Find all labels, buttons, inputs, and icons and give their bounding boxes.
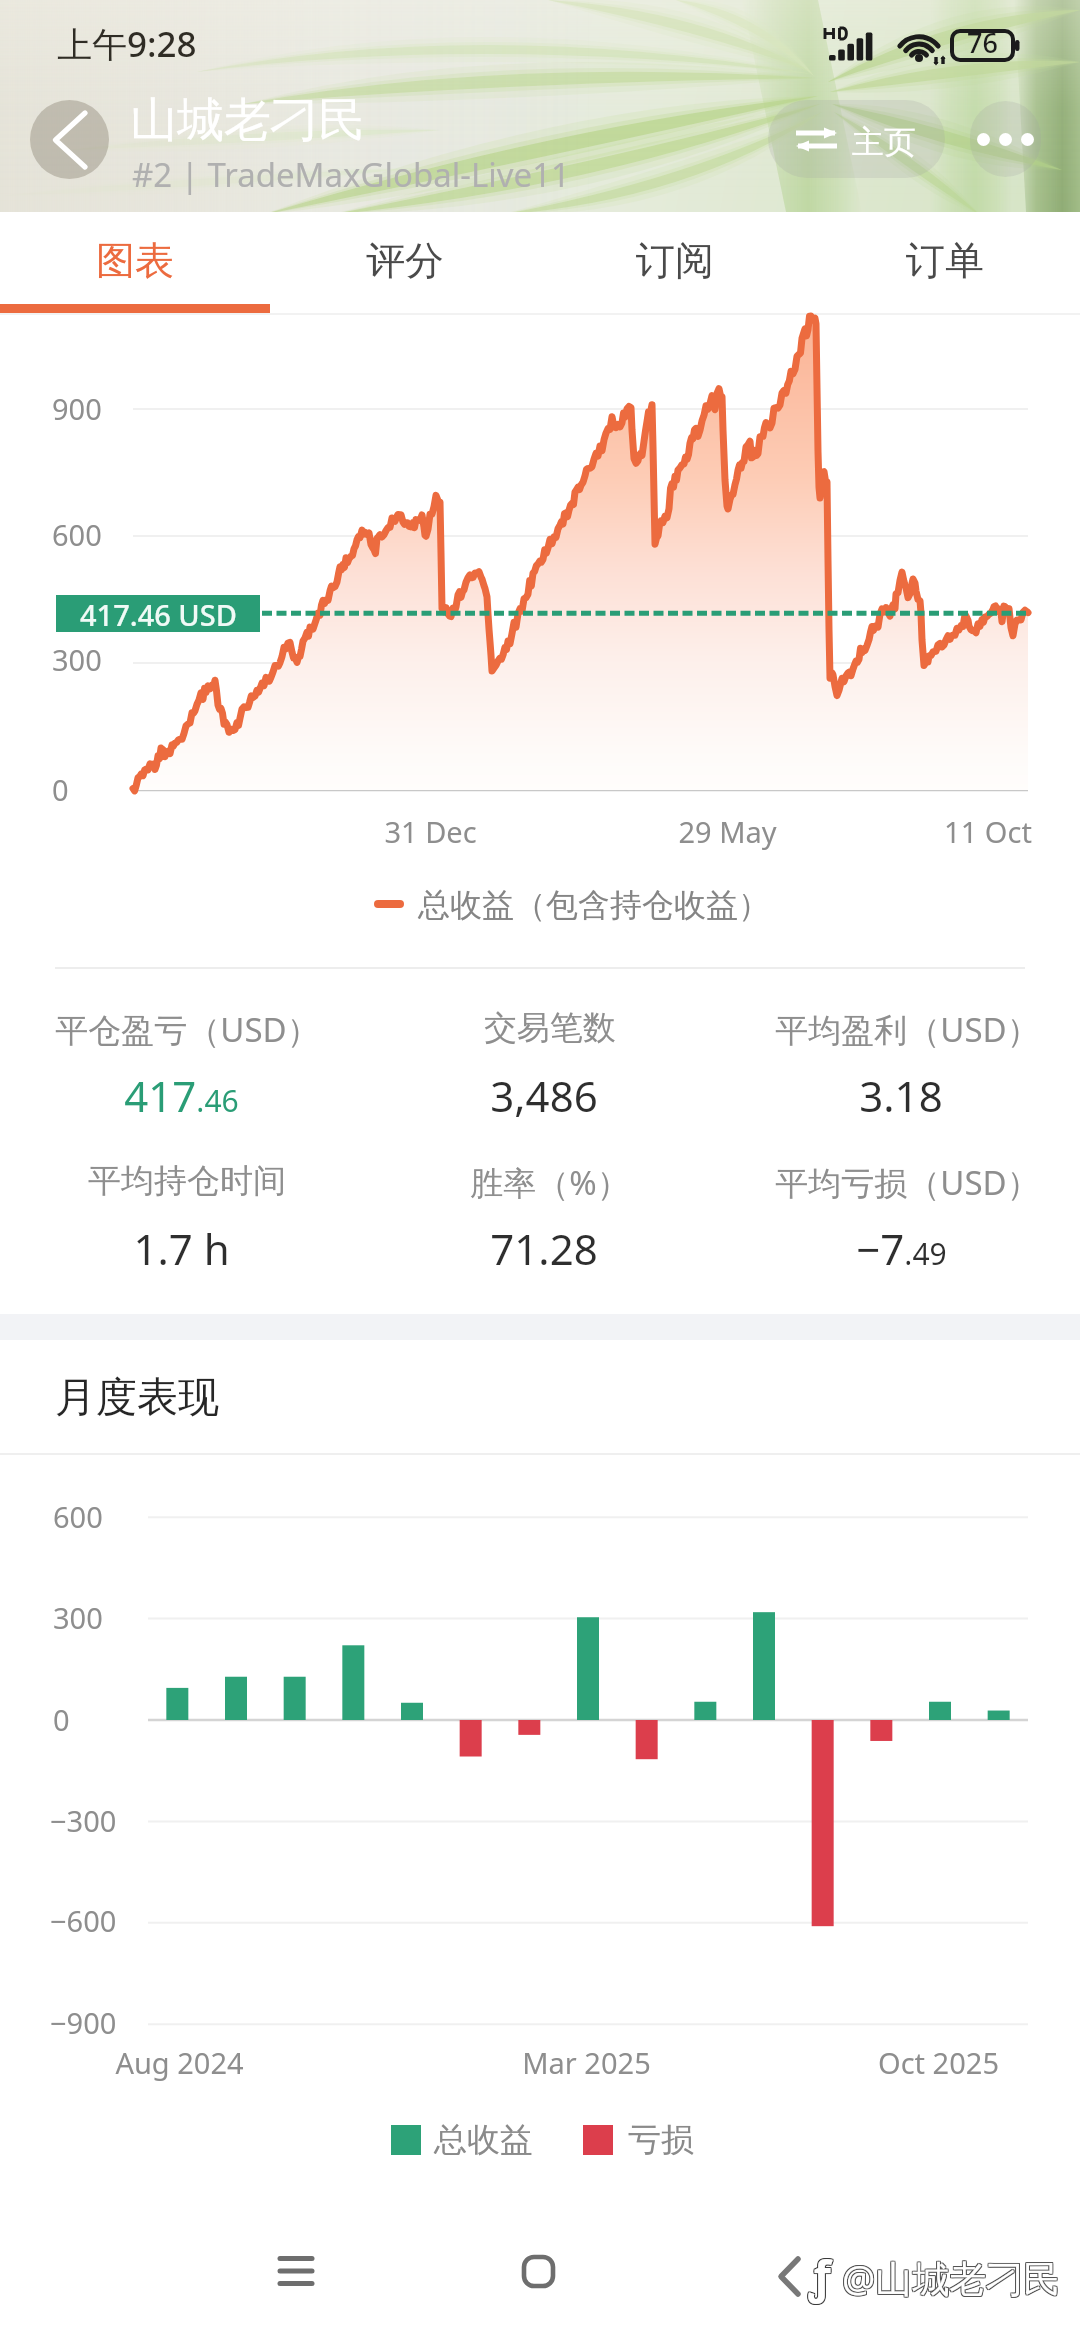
staticText: 417.46 USD: [80, 595, 237, 632]
staticText: 31 Dec: [384, 812, 477, 851]
staticText: 11 Oct: [944, 812, 1032, 851]
staticText: 3.18: [859, 1067, 943, 1124]
staticText: 胜率（%）: [470, 1160, 630, 1205]
staticText: −600: [50, 1901, 117, 1940]
button[interactable]: 评分: [270, 212, 540, 308]
staticText: #2 | TradeMaxGlobal-Live11: [132, 152, 570, 197]
staticText: 总收益（包含持仓收益）: [418, 885, 770, 925]
staticText: 平均盈利（USD）: [775, 1007, 1040, 1052]
staticText: Oct 2025: [878, 2043, 999, 2082]
staticText: 300: [53, 1598, 103, 1637]
staticText: Mar 2025: [522, 2043, 651, 2082]
staticText: 交易笔数: [484, 1007, 616, 1049]
staticText: 76: [967, 24, 998, 60]
button[interactable]: Back: [729, 2216, 849, 2336]
staticText: 总收益: [434, 2119, 533, 2161]
staticText: 0: [53, 1700, 70, 1739]
button[interactable]: Back: [30, 100, 109, 179]
staticText: 平均持仓时间: [88, 1160, 286, 1202]
staticText: 600: [53, 1497, 103, 1536]
staticText: 平仓盈亏（USD）: [55, 1007, 320, 1052]
staticText: −900: [50, 2003, 117, 2042]
staticText: −7.49: [856, 1220, 947, 1277]
staticText: 71.28: [490, 1220, 598, 1277]
button[interactable]: 订阅: [540, 212, 810, 308]
button[interactable]: 图表: [0, 212, 270, 308]
staticText: 评分: [366, 236, 444, 285]
staticText: −300: [50, 1801, 117, 1840]
staticText: 平均亏损（USD）: [775, 1160, 1040, 1205]
staticText: 3,486: [490, 1067, 598, 1124]
button[interactable]: 订单: [810, 212, 1080, 308]
staticText: 600: [52, 515, 102, 554]
staticText: Aug 2024: [115, 2043, 244, 2082]
staticText: 300: [52, 640, 102, 679]
staticText: 主页: [852, 122, 916, 162]
staticText: 山城老刁民: [130, 91, 365, 150]
staticText: 月度表现: [55, 1372, 219, 1424]
staticText: 上午9:28: [57, 20, 197, 68]
button[interactable]: Recents: [236, 2211, 356, 2331]
staticText: 图表: [96, 236, 174, 285]
staticText: 亏损: [628, 2119, 694, 2161]
button[interactable]: More options: [970, 101, 1041, 177]
staticText: 订单: [906, 236, 984, 285]
staticText: 900: [52, 389, 102, 428]
button[interactable]: Home: [478, 2211, 598, 2331]
staticText: 订阅: [636, 236, 714, 285]
staticText: 29 May: [678, 812, 777, 851]
staticText: 0: [52, 770, 69, 809]
staticText: 1.7 h: [133, 1220, 230, 1277]
staticText: 417.46: [124, 1067, 239, 1124]
button[interactable]: 主页: [768, 100, 945, 178]
